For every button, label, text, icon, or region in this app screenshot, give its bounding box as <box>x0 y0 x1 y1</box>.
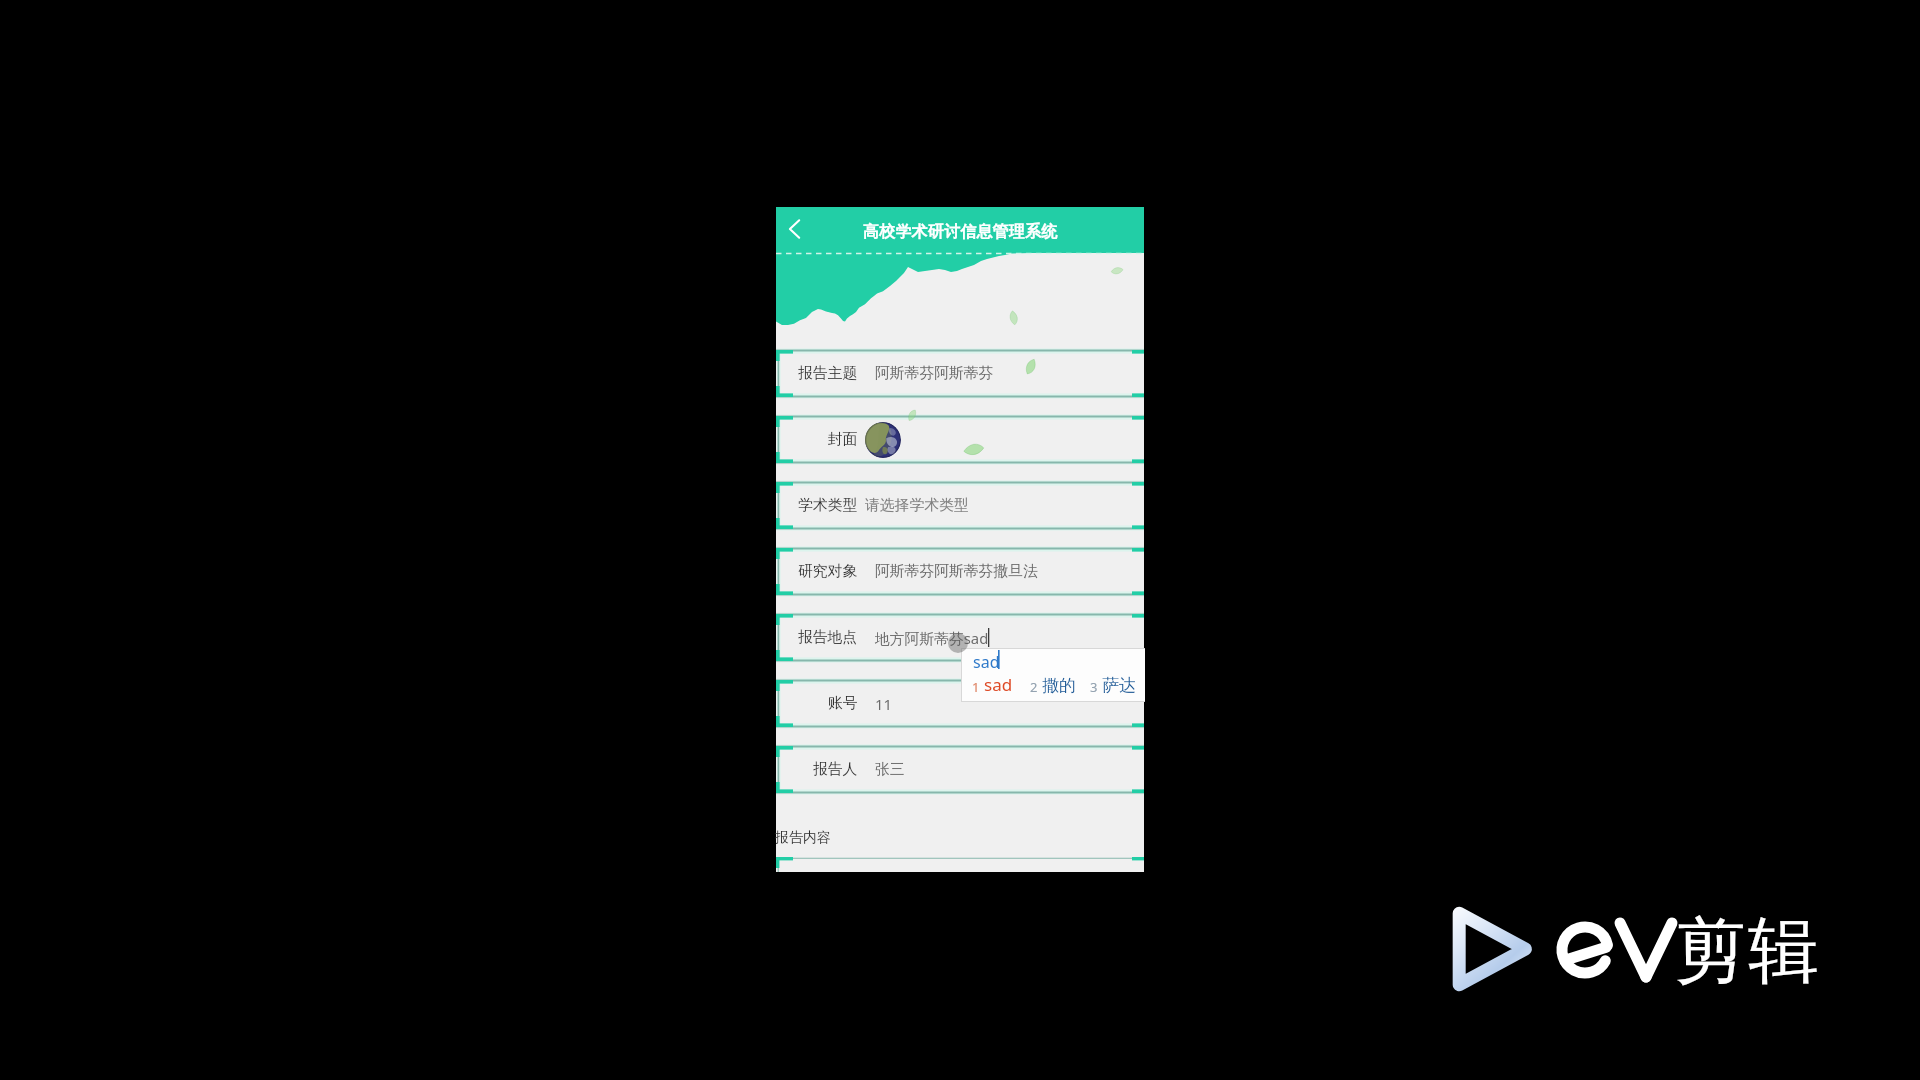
button[interactable]: 研究对象 <box>776 548 1144 595</box>
staticText: 1 <box>972 678 980 696</box>
button[interactable]: 封面 <box>776 416 1144 463</box>
staticText: 账号 <box>828 694 858 713</box>
button[interactable]: 2 <box>1030 675 1076 696</box>
staticText: 2 <box>1030 678 1038 696</box>
staticText: sad <box>984 673 1013 696</box>
staticText: 3 <box>1090 678 1098 696</box>
staticText: 地方阿斯蒂芬sad <box>875 628 989 648</box>
button[interactable]: Back <box>780 214 810 244</box>
staticText: 报告人 <box>813 760 858 779</box>
staticText: 萨达 <box>1102 675 1136 696</box>
staticText: 请选择学术类型 <box>865 496 969 515</box>
button[interactable]: 3 <box>1090 675 1136 696</box>
staticText: 报告内容 <box>775 829 831 847</box>
staticText: 剪辑 <box>1674 907 1820 996</box>
button[interactable]: 报告人 <box>776 746 1144 793</box>
staticText: 阿斯蒂芬阿斯蒂芬撒旦法 <box>875 562 1038 581</box>
staticText: 报告地点 <box>798 628 858 647</box>
staticText: 张三 <box>875 760 905 779</box>
staticText: 学术类型 <box>798 496 858 515</box>
button[interactable]: 报告主题 <box>776 350 1144 397</box>
button[interactable]: 学术类型 <box>776 482 1144 529</box>
staticText: 封面 <box>828 430 858 449</box>
staticText: 阿斯蒂芬阿斯蒂芬 <box>875 364 994 383</box>
staticText: sad <box>973 651 1000 673</box>
staticText: 高校学术研讨信息管理系统 <box>863 222 1058 242</box>
button[interactable]: 账号 <box>776 680 1144 727</box>
button[interactable]: 报告内容 <box>775 823 1143 853</box>
staticText: 11 <box>875 694 892 714</box>
button[interactable]: 报告地点 <box>776 614 1144 661</box>
button[interactable]: 1 <box>972 673 1013 696</box>
staticText: 研究对象 <box>798 562 858 581</box>
staticText: 撒的 <box>1042 675 1076 696</box>
staticText: 报告主题 <box>798 364 858 383</box>
button[interactable]: Choose cover image <box>865 422 901 458</box>
